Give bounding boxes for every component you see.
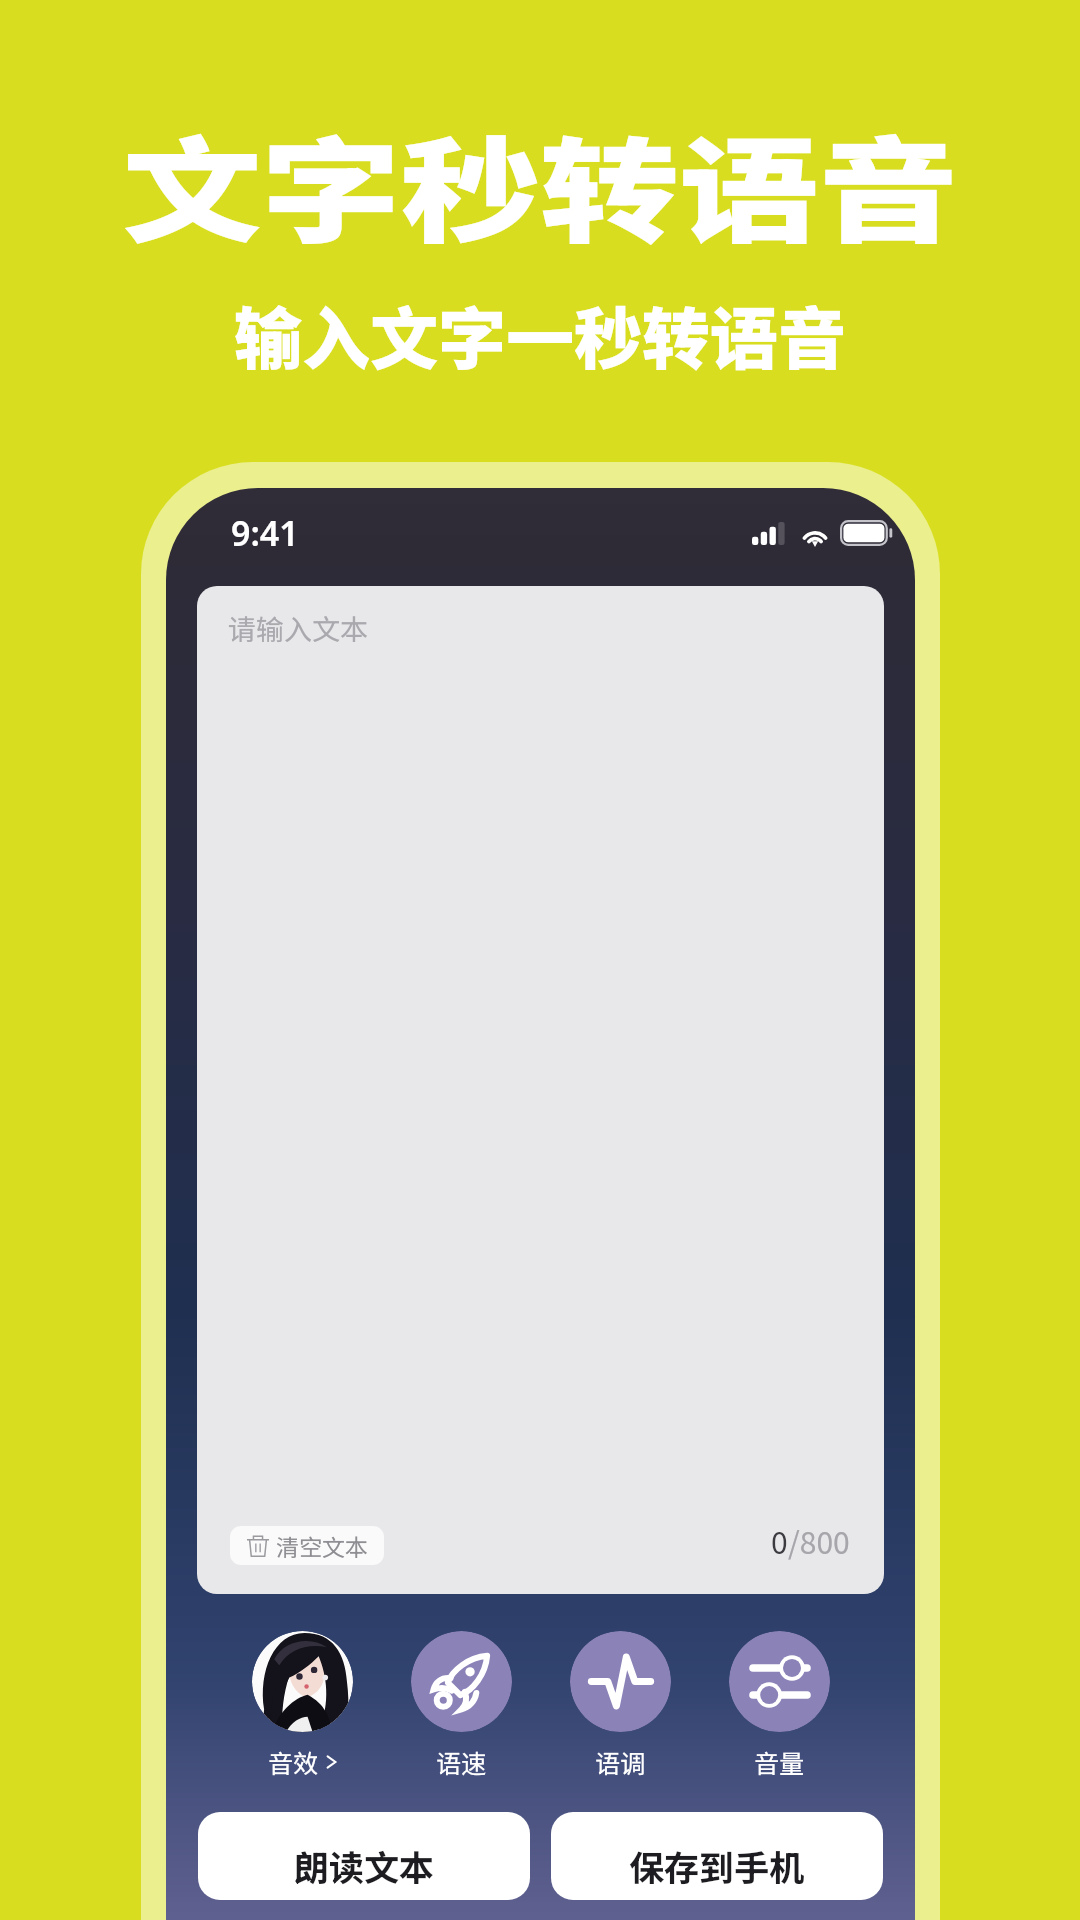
staticText: 0	[771, 1519, 788, 1562]
button[interactable]: 清空文本	[230, 1526, 384, 1565]
staticText: 输入文字一秒转语音	[234, 285, 847, 383]
staticText: 9:41	[231, 510, 299, 556]
staticText: 文字秒转语音	[122, 100, 958, 266]
button[interactable]: 语调	[570, 1631, 671, 1780]
staticText: 语速	[436, 1744, 487, 1780]
button[interactable]: 音量	[729, 1631, 830, 1780]
button[interactable]: 文本输入框	[197, 586, 884, 1594]
button[interactable]: 音效	[252, 1631, 353, 1780]
staticText: 朗读文本	[294, 1840, 435, 1891]
staticText: 保存到手机	[629, 1840, 805, 1891]
staticText: 音效	[268, 1744, 319, 1780]
button[interactable]: 保存到手机	[551, 1812, 883, 1900]
staticText: 语调	[595, 1744, 646, 1780]
button[interactable]: 语速	[411, 1631, 512, 1780]
button[interactable]: 朗读文本	[198, 1812, 530, 1900]
staticText: /800	[788, 1519, 850, 1562]
staticText: 请输入文本	[228, 608, 369, 649]
staticText: 清空文本	[276, 1529, 368, 1562]
staticText: 音量	[754, 1744, 805, 1780]
